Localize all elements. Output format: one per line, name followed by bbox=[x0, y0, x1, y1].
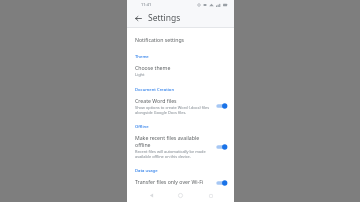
staticText: Document Creation bbox=[135, 87, 175, 93]
staticText: Notification settings bbox=[135, 36, 185, 43]
staticText: Choose theme bbox=[135, 64, 171, 71]
staticText: Theme bbox=[135, 54, 149, 60]
button[interactable]: Back bbox=[132, 12, 144, 24]
staticText: Settings bbox=[148, 12, 181, 24]
button[interactable]: On bbox=[215, 143, 228, 151]
staticText: Offline bbox=[135, 124, 149, 130]
button[interactable]: Back bbox=[146, 190, 157, 201]
button[interactable]: On bbox=[215, 179, 228, 187]
staticText: Make recent files available offline bbox=[135, 134, 211, 148]
button[interactable]: Create Word files bbox=[127, 95, 234, 117]
button[interactable]: Transfer files only over Wi-Fi bbox=[127, 176, 234, 189]
button[interactable]: Choose theme bbox=[127, 62, 234, 79]
button[interactable]: Notification settings bbox=[127, 33, 234, 46]
button[interactable]: Make recent files available offline bbox=[127, 132, 234, 161]
button[interactable]: Home bbox=[175, 190, 186, 201]
staticText: Show options to create Word (.docx) file… bbox=[135, 105, 211, 115]
button[interactable]: On bbox=[215, 102, 228, 110]
staticText: 11:41 bbox=[141, 2, 152, 7]
staticText: Recent files will automatically be made … bbox=[135, 149, 211, 159]
button[interactable]: Recent apps bbox=[205, 190, 216, 201]
staticText: Data usage bbox=[135, 168, 158, 174]
staticText: Create Word files bbox=[135, 97, 177, 104]
staticText: Transfer files only over Wi-Fi bbox=[135, 178, 204, 185]
staticText: Light bbox=[135, 72, 145, 77]
